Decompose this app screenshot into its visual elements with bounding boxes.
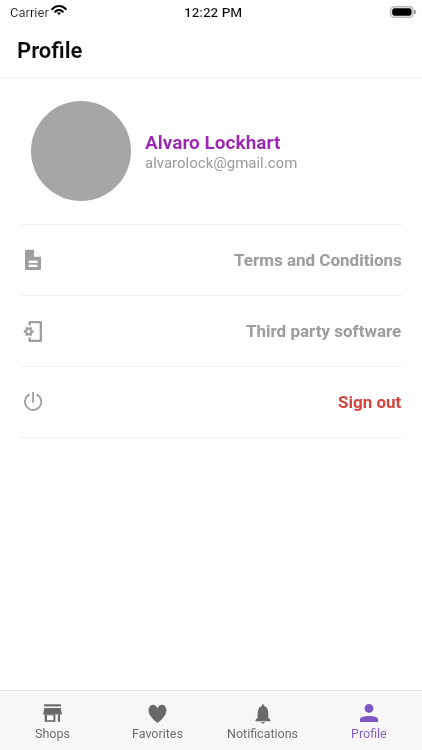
staticText: Carrier	[10, 5, 49, 20]
button[interactable]: Third party software	[0, 296, 422, 366]
staticText: Notifications	[227, 726, 299, 741]
button[interactable]: Shops	[0, 691, 105, 741]
staticText: Profile	[17, 38, 83, 64]
button[interactable]: Notifications	[210, 691, 316, 741]
button[interactable]: Profile	[316, 691, 422, 741]
button[interactable]: Favorites	[105, 691, 210, 741]
staticText: Profile	[351, 726, 387, 741]
staticText: Favorites	[132, 726, 183, 741]
button[interactable]: Sign out	[0, 367, 422, 437]
staticText: alvarolock@gmail.com	[145, 154, 298, 172]
staticText: Alvaro Lockhart	[145, 131, 281, 153]
staticText: 12:22 PM	[184, 4, 243, 20]
staticText: Sign out	[338, 392, 402, 412]
staticText: Terms and Conditions	[234, 250, 402, 270]
staticText: Shops	[35, 726, 70, 741]
staticText: Third party software	[246, 321, 402, 341]
button[interactable]: Terms and Conditions	[0, 225, 422, 295]
